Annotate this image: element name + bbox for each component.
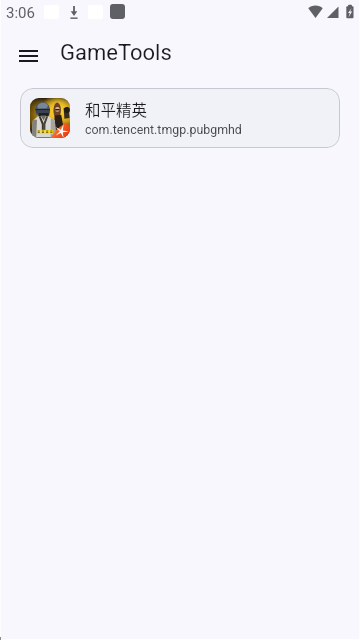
staticText: 和平精英 — [85, 98, 148, 120]
staticText: GameTools — [60, 40, 172, 66]
button[interactable]: 和平精英 — [20, 88, 340, 148]
staticText: com.tencent.tmgp.pubgmhd — [85, 122, 242, 137]
button[interactable]: Open navigation menu — [10, 38, 46, 74]
staticText: 3:06 — [6, 4, 35, 22]
